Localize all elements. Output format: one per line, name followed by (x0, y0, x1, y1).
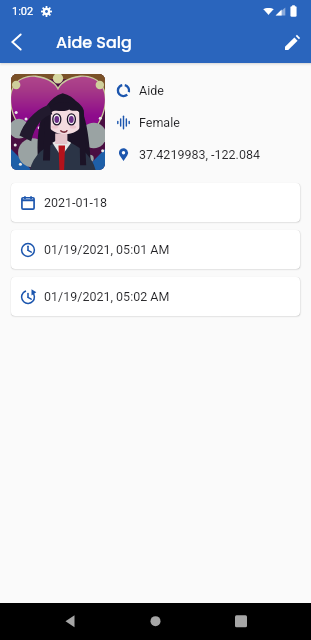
staticText: 01/19/2021, 05:02 AM (44, 289, 170, 304)
staticText: 1:02 (12, 5, 34, 18)
button[interactable]: Back (0, 24, 36, 63)
other: Settings (41, 6, 52, 17)
button[interactable]: Avatar (11, 74, 105, 170)
staticText: 37.4219983, -122.084 (139, 147, 260, 162)
staticText: Aide (139, 83, 164, 98)
button[interactable]: 2021-01-18 (11, 183, 300, 222)
staticText: Female (139, 115, 180, 130)
staticText: Aide Salg (56, 31, 132, 53)
button[interactable]: Edit (273, 24, 311, 63)
button[interactable]: 01/19/2021, 05:02 AM (11, 277, 300, 316)
staticText: 01/19/2021, 05:01 AM (44, 242, 170, 257)
button[interactable]: 01/19/2021, 05:01 AM (11, 230, 300, 269)
staticText: 2021-01-18 (44, 195, 108, 210)
